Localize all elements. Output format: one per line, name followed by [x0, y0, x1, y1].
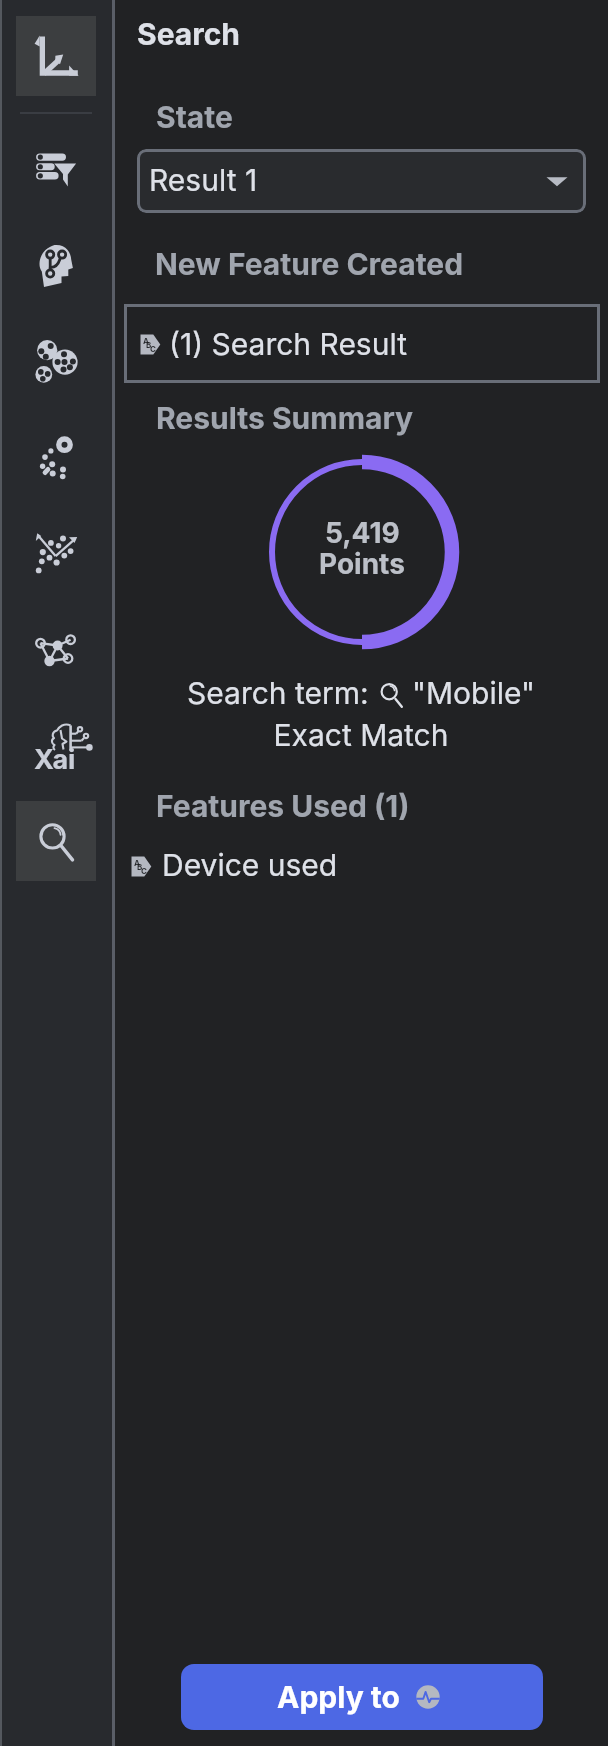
- staticText: Results Summary: [156, 400, 414, 436]
- staticText: State: [156, 99, 233, 135]
- staticText: "Mobile": [412, 675, 535, 711]
- staticText: C: [150, 344, 156, 354]
- button[interactable]: Chart axes: [16, 16, 96, 96]
- staticText: C: [141, 866, 147, 876]
- staticText: Device used: [162, 847, 338, 883]
- button[interactable]: Network: [16, 609, 96, 689]
- staticText: Apply to: [277, 1679, 400, 1715]
- staticText: Result 1: [149, 162, 258, 198]
- button[interactable]: Search: [16, 801, 96, 881]
- staticText: Exact Match: [114, 717, 608, 753]
- staticText: Search: [137, 16, 241, 52]
- staticText: Points: [319, 547, 405, 581]
- staticText: 5,419: [325, 516, 400, 550]
- button[interactable]: Explainable AI: [16, 705, 96, 785]
- button[interactable]: Result 1: [137, 149, 586, 213]
- staticText: New Feature Created: [155, 246, 464, 282]
- staticText: A: [143, 336, 149, 346]
- button[interactable]: Apply to: [181, 1664, 543, 1730]
- button[interactable]: Outliers: [16, 417, 96, 497]
- staticText: B: [137, 862, 143, 872]
- button[interactable]: Model insight: [16, 225, 96, 305]
- button[interactable]: A: [124, 304, 600, 383]
- staticText: B: [146, 340, 152, 350]
- staticText: Xai: [34, 743, 76, 776]
- staticText: A: [134, 858, 140, 868]
- button[interactable]: Clusters: [16, 321, 96, 401]
- button[interactable]: Scatter trend: [16, 513, 96, 593]
- staticText: (1) Search Result: [169, 326, 407, 362]
- staticText: Features Used (1): [156, 788, 410, 824]
- button[interactable]: Filter data: [16, 129, 96, 209]
- staticText: Search term:: [187, 675, 369, 711]
